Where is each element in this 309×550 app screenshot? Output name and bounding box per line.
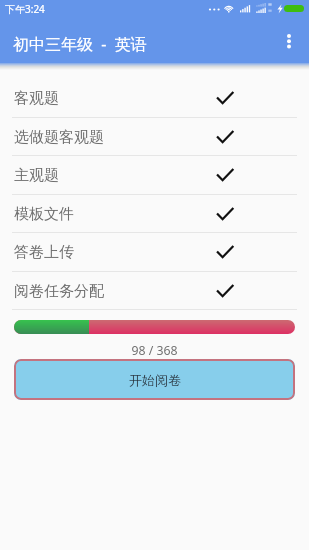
staticText: 主观题 [14,166,59,185]
staticText: 选做题客观题 [14,128,104,147]
button[interactable]: 客观题 [0,79,309,118]
button[interactable]: 模板文件 [0,195,309,233]
button[interactable]: 阅卷任务分配 [0,272,309,310]
button[interactable]: 选做题客观题 [0,118,309,156]
button[interactable]: 开始阅卷 [14,359,295,400]
staticText: 98 / 368 [0,342,309,359]
staticText: 答卷上传 [14,243,74,262]
staticText: 客观题 [14,89,59,108]
staticText: 开始阅卷 [129,372,181,388]
staticText: 模板文件 [14,205,74,224]
button[interactable]: 主观题 [0,156,309,195]
button[interactable]: 答卷上传 [0,233,309,272]
button[interactable]: More options [269,24,309,64]
staticText: 初中三年级 - 英语 [13,33,147,55]
staticText: 阅卷任务分配 [14,282,104,301]
staticText: 下午3:24 [5,2,45,16]
